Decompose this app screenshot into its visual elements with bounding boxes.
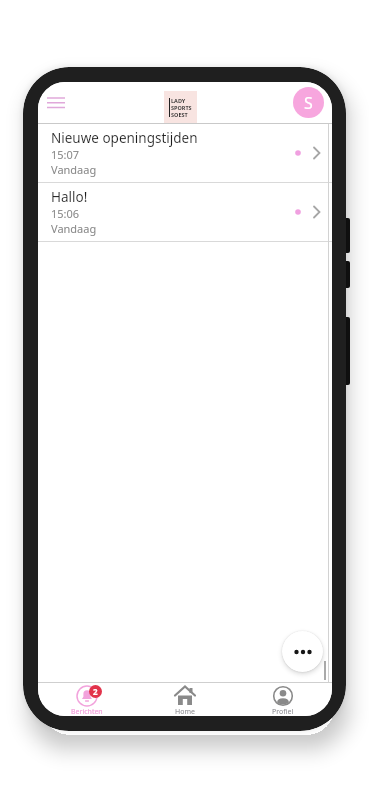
button[interactable]: Profiel	[234, 683, 332, 716]
button[interactable]: Home	[136, 683, 234, 716]
staticText: Vandaag	[51, 221, 97, 236]
button[interactable]: Nieuwe openingstijden	[38, 124, 332, 182]
staticText: Hallo!	[51, 188, 88, 206]
staticText: Home	[175, 707, 195, 716]
staticText: SOEST	[171, 111, 188, 118]
button[interactable]	[282, 631, 323, 672]
staticText: 15:07	[51, 147, 80, 162]
staticText: Vandaag	[51, 162, 97, 177]
button[interactable]: 2	[38, 683, 136, 716]
staticText: S	[304, 92, 313, 114]
staticText: Nieuwe openingstijden	[51, 129, 198, 147]
staticText: 15:06	[51, 206, 80, 221]
button[interactable]: Hallo!	[38, 183, 332, 241]
staticText: 2	[93, 686, 98, 697]
staticText: LADY	[171, 97, 186, 104]
button[interactable]: S	[293, 87, 324, 118]
button[interactable]	[43, 90, 69, 116]
button[interactable]: LADY	[164, 91, 197, 123]
staticText: SPORTS	[171, 104, 192, 111]
staticText: Berichten	[71, 707, 103, 716]
staticText: Profiel	[272, 707, 294, 716]
